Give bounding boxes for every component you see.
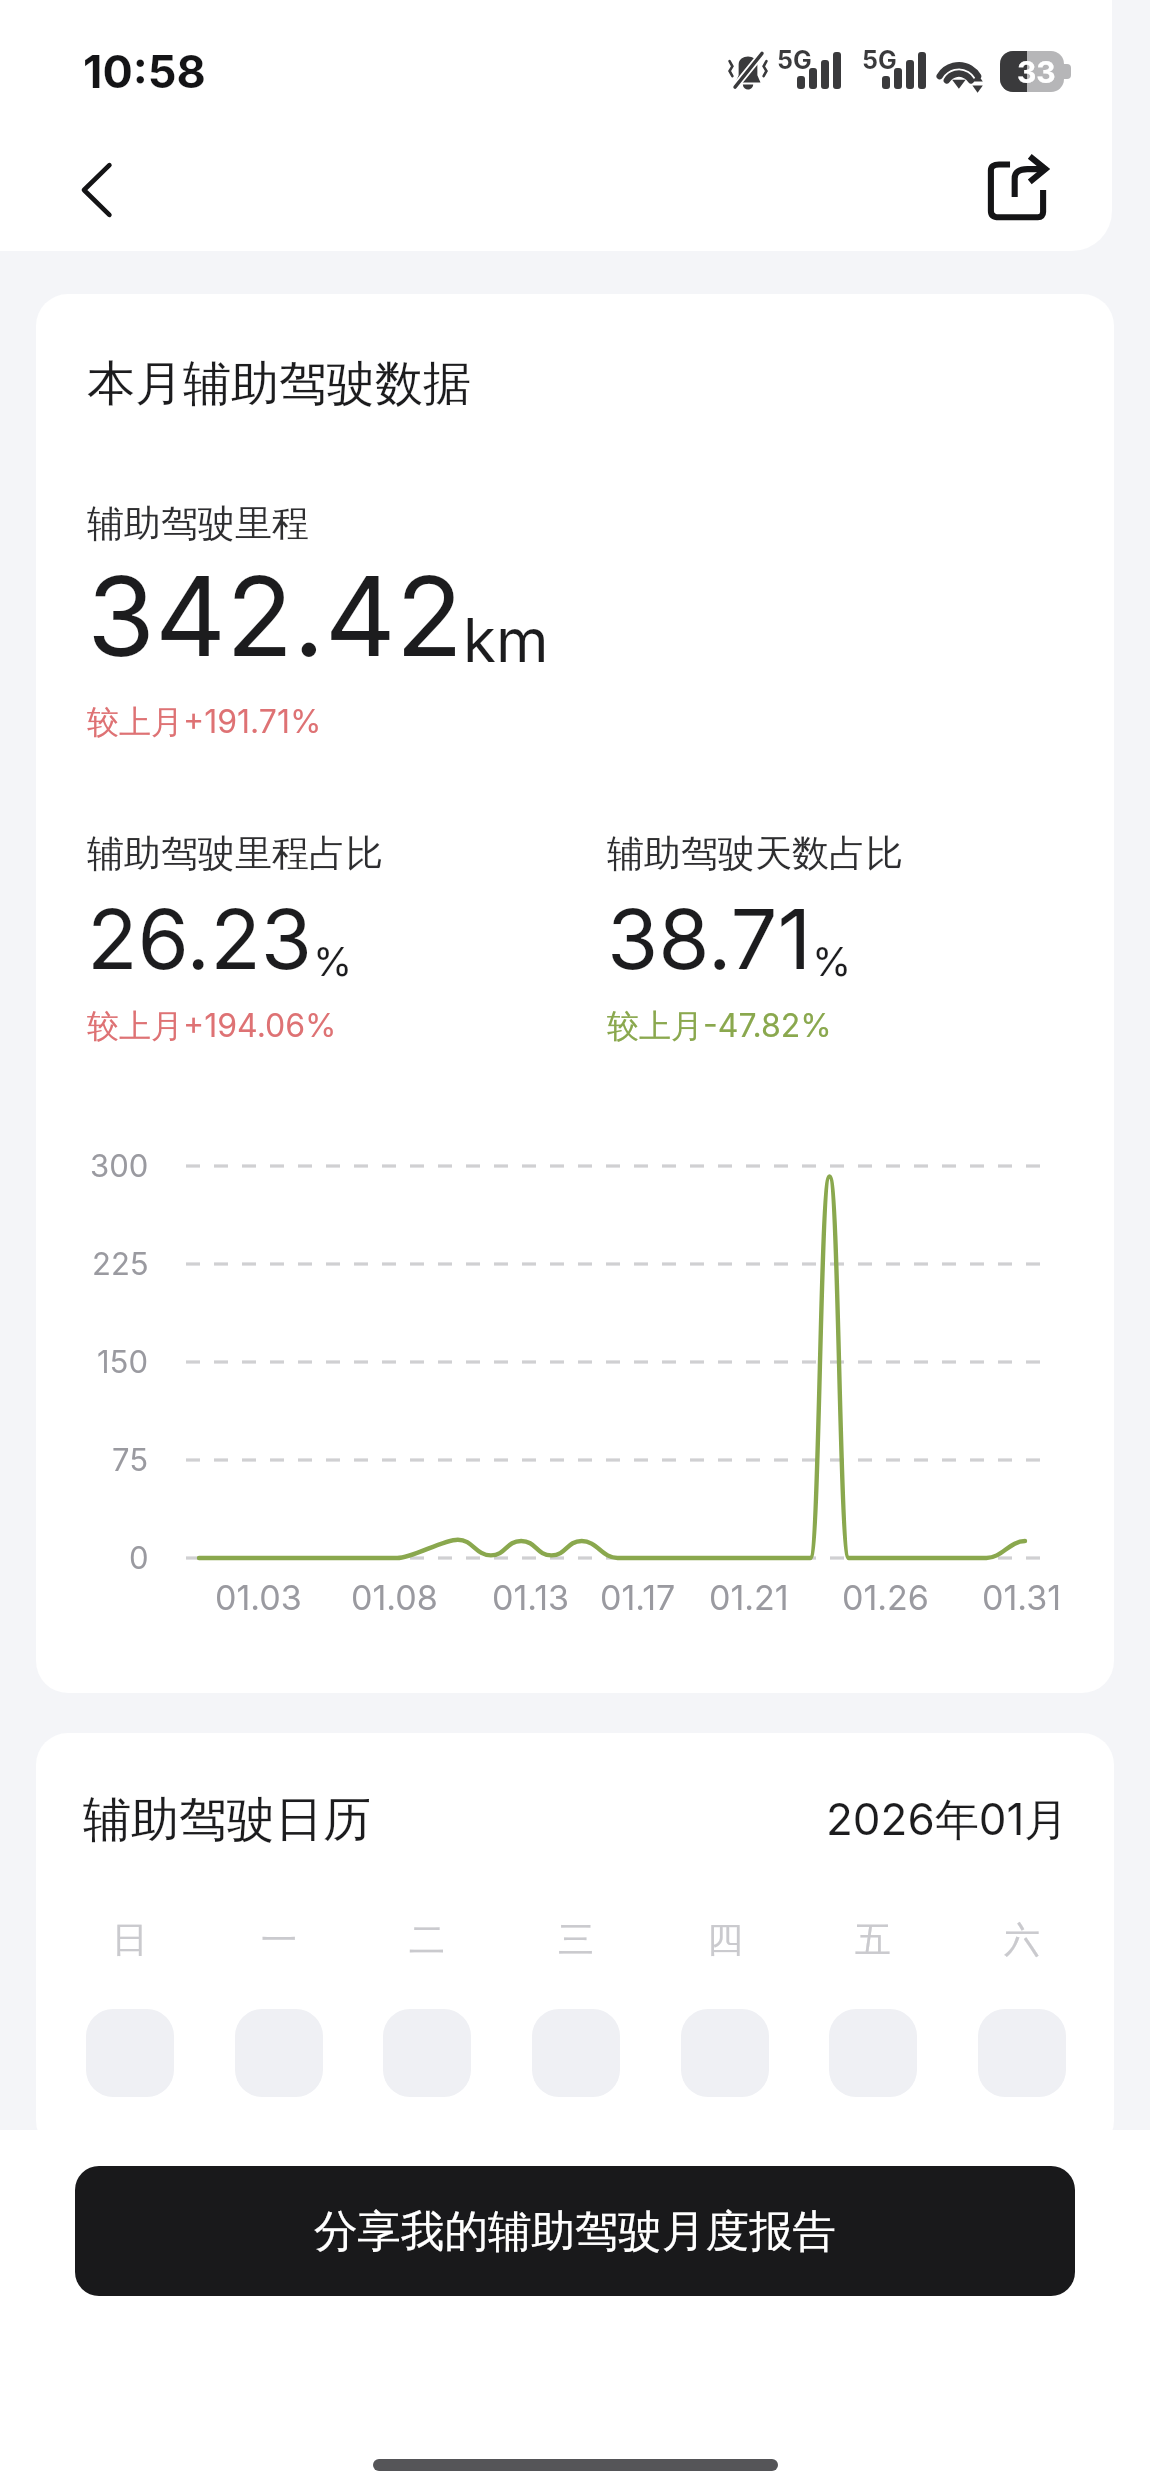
staticText: 一 xyxy=(261,1917,297,1962)
button[interactable]: 分享我的辅助驾驶月度报告 xyxy=(75,2166,1075,2296)
staticText: 10:58 xyxy=(83,44,206,98)
staticText: 辅助驾驶天数占比 xyxy=(607,830,903,877)
staticText: 较上月+191.71% xyxy=(87,702,322,743)
staticText: 01.26 xyxy=(842,1577,929,1618)
staticText: 2026年01月 xyxy=(826,1792,1069,1848)
staticText: 01.13 xyxy=(492,1577,569,1618)
staticText: 26.23 xyxy=(87,889,313,989)
button[interactable] xyxy=(86,2009,174,2097)
button[interactable] xyxy=(681,2009,769,2097)
staticText: 342.42 xyxy=(87,549,463,682)
staticText: 较上月-47.82% xyxy=(607,1006,832,1047)
button[interactable]: Back xyxy=(42,135,152,245)
staticText: % xyxy=(313,937,353,985)
staticText: 分享我的辅助驾驶月度报告 xyxy=(314,2204,836,2259)
staticText: 日 xyxy=(112,1917,148,1962)
staticText: 5G xyxy=(862,45,897,75)
button[interactable] xyxy=(235,2009,323,2097)
staticText: 300 xyxy=(90,1147,149,1185)
staticText: 二 xyxy=(409,1917,445,1962)
staticText: 225 xyxy=(92,1245,149,1283)
button[interactable]: Share xyxy=(962,135,1072,245)
staticText: 01.17 xyxy=(600,1577,676,1618)
staticText: 5G xyxy=(777,45,812,75)
staticText: 01.31 xyxy=(982,1577,1061,1618)
staticText: 0 xyxy=(129,1539,149,1577)
staticText: % xyxy=(812,937,852,985)
staticText: 本月辅助驾驶数据 xyxy=(87,354,471,414)
staticText: 01.08 xyxy=(351,1577,438,1618)
staticText: 01.03 xyxy=(215,1577,302,1618)
staticText: 辅助驾驶里程占比 xyxy=(87,830,383,877)
staticText: 150 xyxy=(97,1343,149,1381)
button[interactable] xyxy=(383,2009,471,2097)
staticText: 33 xyxy=(1017,54,1056,90)
staticText: 五 xyxy=(855,1917,891,1962)
button[interactable] xyxy=(978,2009,1066,2097)
button[interactable] xyxy=(829,2009,917,2097)
staticText: 六 xyxy=(1004,1917,1040,1962)
staticText: 三 xyxy=(558,1917,594,1962)
staticText: 38.71 xyxy=(607,889,812,989)
staticText: 01.21 xyxy=(709,1577,789,1618)
staticText: 四 xyxy=(707,1917,743,1962)
staticText: 较上月+194.06% xyxy=(87,1006,337,1047)
button[interactable] xyxy=(532,2009,620,2097)
staticText: km xyxy=(463,604,549,677)
staticText: 辅助驾驶里程 xyxy=(87,500,309,547)
staticText: 75 xyxy=(112,1441,149,1479)
staticText: 辅助驾驶日历 xyxy=(83,1790,371,1850)
